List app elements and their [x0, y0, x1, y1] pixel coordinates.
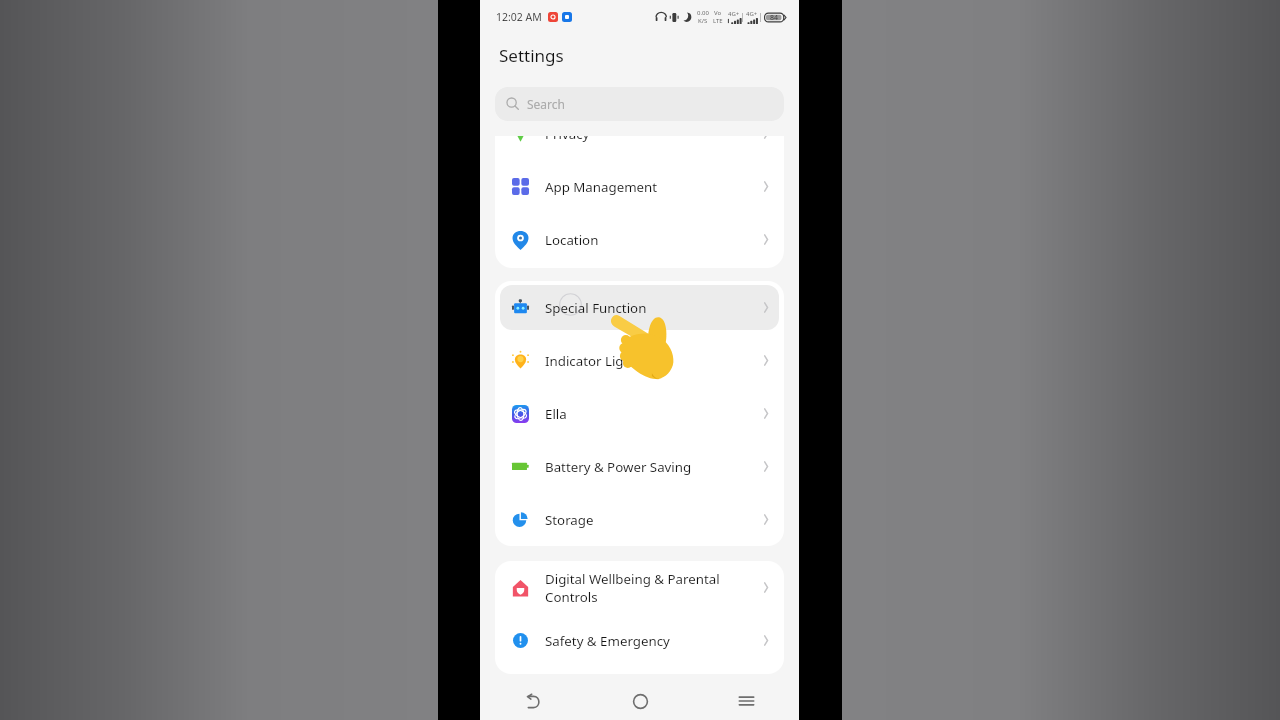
button[interactable]: Digital Wellbeing & Parental Controls	[495, 561, 784, 614]
staticText: Vo	[714, 9, 722, 17]
staticText: Special Function	[545, 299, 757, 317]
staticText: 4G+	[746, 10, 758, 18]
staticText: Safety & Emergency	[545, 632, 757, 650]
button[interactable]: Home	[587, 678, 693, 720]
staticText: 0.00	[697, 9, 709, 17]
staticText: LTE	[713, 17, 723, 25]
staticText: Search	[527, 96, 565, 112]
staticText: Ella	[545, 405, 757, 423]
button[interactable]: Storage	[495, 493, 784, 546]
staticText: Digital Wellbeing & Parental Controls	[545, 570, 757, 606]
button[interactable]: Location	[495, 213, 784, 266]
staticText: Storage	[545, 511, 757, 529]
staticText: Privacy	[545, 136, 757, 143]
button[interactable]: Indicator Light	[495, 334, 784, 387]
button[interactable]: Ella	[495, 387, 784, 440]
button[interactable]: Battery & Power Saving	[495, 440, 784, 493]
staticText: Battery & Power Saving	[545, 458, 757, 476]
staticText: 84	[770, 13, 779, 23]
button[interactable]: Privacy	[495, 136, 784, 160]
staticText: K/S	[698, 17, 708, 25]
staticText: App Management	[545, 178, 757, 196]
staticText: Settings	[499, 44, 564, 67]
button[interactable]: Safety & Emergency	[495, 614, 784, 667]
staticText: Indicator Light	[545, 352, 757, 370]
button[interactable]: Back	[480, 678, 587, 720]
staticText: Location	[545, 231, 757, 249]
button[interactable]: App Management	[495, 160, 784, 213]
staticText: 12:02 AM	[496, 10, 542, 24]
button[interactable]: Recent apps	[693, 678, 799, 720]
button[interactable]: Search	[495, 87, 784, 121]
staticText: 4G+	[728, 10, 740, 18]
button[interactable]: Special Function	[495, 281, 784, 334]
